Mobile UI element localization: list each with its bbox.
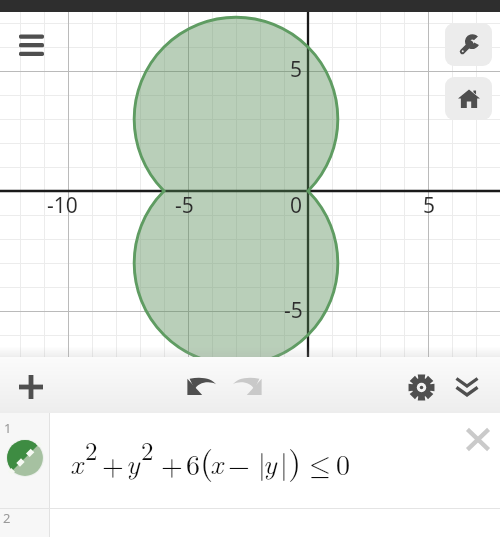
staticText: -5 (175, 191, 194, 220)
button[interactable]: Collapse keypad (446, 365, 488, 407)
staticText: ) (288, 436, 302, 484)
staticText: + (161, 452, 183, 480)
staticText: x (70, 442, 83, 482)
staticText: -10 (47, 191, 78, 220)
staticText: − (228, 452, 250, 480)
staticText: | (280, 442, 288, 482)
staticText: 1 (4, 419, 12, 437)
staticText: 0 (290, 191, 303, 220)
staticText: 5 (290, 55, 303, 84)
staticText: y (126, 442, 140, 482)
button[interactable]: Delete expression (461, 422, 495, 456)
button[interactable]: Menu (9, 22, 53, 66)
staticText: 2 (85, 432, 98, 467)
button[interactable]: Undo (180, 365, 222, 407)
staticText: | (258, 442, 266, 482)
button[interactable]: Graph settings (400, 366, 442, 408)
button[interactable]: Home (445, 77, 492, 120)
staticText: ≤ (309, 452, 331, 480)
staticText: 0 (336, 443, 351, 483)
staticText: 2 (141, 432, 154, 467)
button[interactable]: Add expression (10, 366, 52, 408)
staticText: + (102, 452, 124, 480)
staticText: ( (200, 436, 214, 484)
button[interactable]: Settings (445, 23, 492, 66)
button[interactable]: Expression 1 color (0, 413, 49, 508)
staticText: x (210, 442, 223, 482)
staticText: 6 (186, 443, 201, 483)
staticText: 5 (423, 191, 436, 220)
button[interactable]: Redo (227, 365, 269, 407)
staticText: -5 (284, 296, 303, 325)
staticText: 2 (3, 509, 11, 527)
staticText: y (263, 442, 277, 482)
